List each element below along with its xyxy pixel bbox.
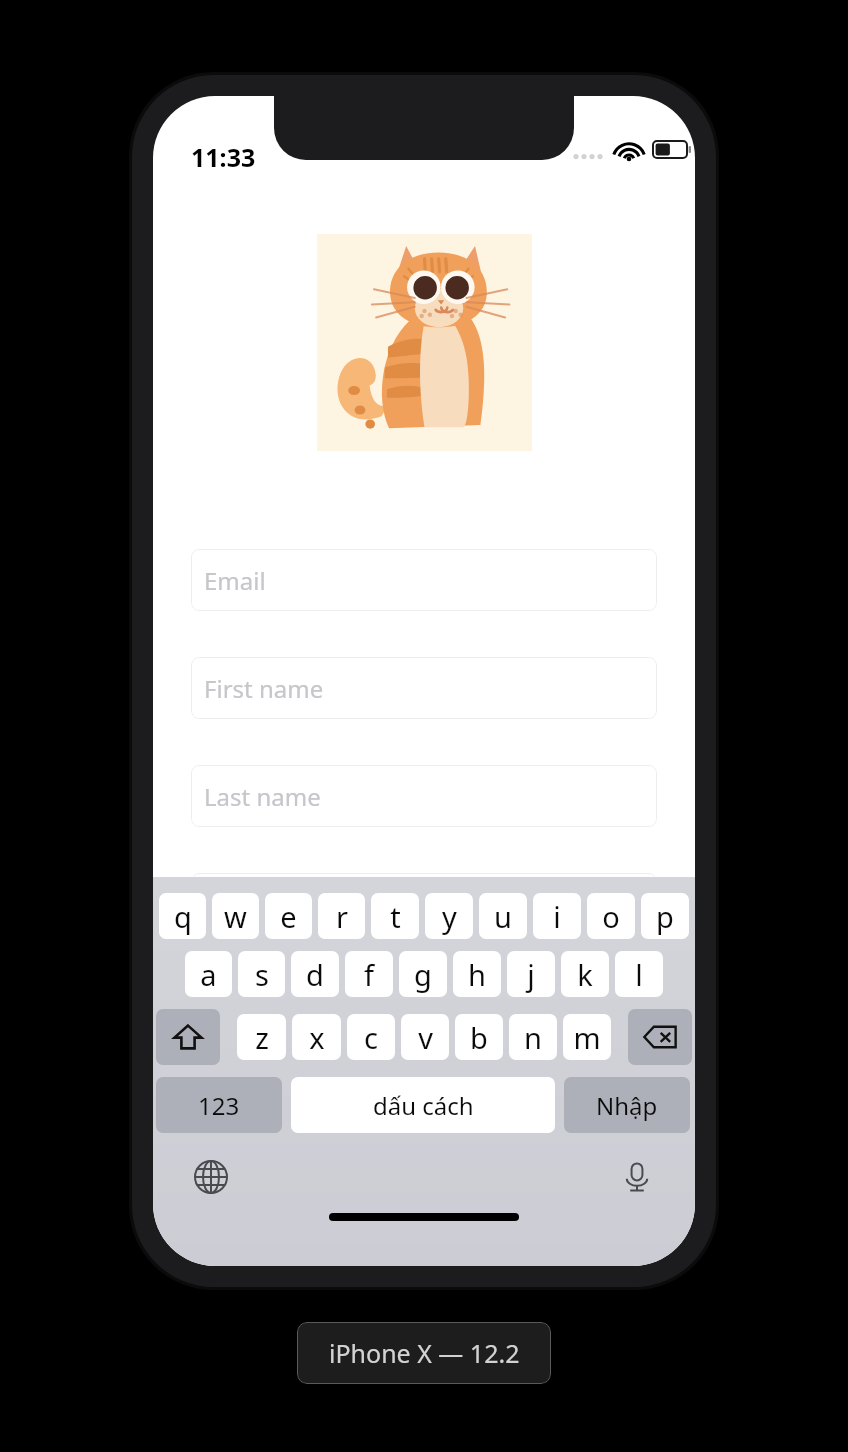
button[interactable]: k [561, 951, 609, 997]
button[interactable]: Shift [156, 1009, 220, 1065]
staticText: m [573, 1018, 601, 1057]
staticText: y [442, 897, 457, 936]
staticText: f [364, 955, 374, 994]
staticText: dấu cách [373, 1089, 474, 1122]
button[interactable]: g [399, 951, 447, 997]
button[interactable]: r [318, 893, 365, 939]
button[interactable]: q [159, 893, 206, 939]
staticText: n [524, 1018, 542, 1057]
button[interactable]: z [237, 1014, 286, 1060]
staticText: o [602, 897, 620, 936]
button[interactable]: v [401, 1014, 449, 1060]
button[interactable]: i [533, 893, 581, 939]
staticText: Last name [204, 780, 321, 813]
staticText: 11:33 [191, 140, 256, 174]
button[interactable]: Last name [191, 765, 657, 827]
button[interactable]: m [563, 1014, 611, 1060]
staticText: s [255, 955, 269, 994]
button[interactable]: d [291, 951, 339, 997]
button[interactable]: u [479, 893, 527, 939]
staticText: First name [204, 672, 324, 705]
staticText: u [494, 897, 512, 936]
staticText: c [364, 1018, 378, 1057]
button[interactable]: e [265, 893, 312, 939]
button[interactable]: c [347, 1014, 395, 1060]
staticText: Email [204, 564, 266, 597]
button[interactable]: Dictation [615, 1155, 659, 1199]
button[interactable]: s [238, 951, 285, 997]
button[interactable]: j [507, 951, 555, 997]
button[interactable]: x [292, 1014, 341, 1060]
button[interactable]: f [345, 951, 393, 997]
button[interactable]: Change keyboard [189, 1155, 233, 1199]
button[interactable] [191, 873, 657, 935]
staticText: iPhone X — 12.2 [329, 1336, 520, 1370]
button[interactable]: a [185, 951, 232, 997]
staticText: a [200, 955, 217, 994]
staticText: b [470, 1018, 488, 1057]
button[interactable]: h [453, 951, 501, 997]
button[interactable]: 123 [156, 1077, 282, 1133]
staticText: i [553, 897, 561, 936]
button[interactable]: Cat photo [317, 234, 532, 451]
staticText: k [577, 955, 593, 994]
button[interactable]: t [371, 893, 419, 939]
staticText: e [280, 897, 297, 936]
button[interactable]: Delete [628, 1009, 692, 1065]
staticText: 123 [198, 1089, 240, 1122]
button[interactable]: o [587, 893, 635, 939]
button[interactable]: First name [191, 657, 657, 719]
button[interactable]: iPhone X — 12.2 [297, 1322, 551, 1384]
staticText: h [468, 955, 486, 994]
staticText: g [414, 955, 432, 994]
staticText: v [418, 1018, 433, 1057]
staticText: z [255, 1018, 269, 1057]
button[interactable]: Nhập [564, 1077, 690, 1133]
button[interactable]: p [641, 893, 689, 939]
staticText: d [306, 955, 324, 994]
staticText: r [336, 897, 348, 936]
staticText: l [635, 955, 643, 994]
staticText: j [527, 955, 535, 994]
button[interactable]: n [509, 1014, 557, 1060]
button[interactable]: y [425, 893, 473, 939]
staticText: p [656, 897, 674, 936]
staticText: Nhập [596, 1089, 658, 1122]
staticText: w [224, 897, 247, 936]
button[interactable]: b [455, 1014, 503, 1060]
button[interactable]: w [212, 893, 259, 939]
staticText: x [309, 1018, 325, 1057]
button[interactable]: dấu cách [291, 1077, 555, 1133]
button[interactable]: l [615, 951, 663, 997]
button[interactable]: Email [191, 549, 657, 611]
staticText: t [390, 897, 401, 936]
staticText: q [174, 897, 192, 936]
